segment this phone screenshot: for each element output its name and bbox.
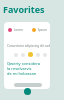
staticText: Consectetur adipiscing elit sed	[7, 44, 50, 48]
staticText: Lorem	[14, 28, 24, 32]
button[interactable]: Add	[24, 88, 31, 95]
button[interactable]: Progress	[14, 83, 42, 87]
staticText: Qwerty considera la resolvarvis de mi he…	[7, 61, 40, 76]
staticText: Favorites	[3, 3, 45, 15]
staticText: Ipsum	[38, 28, 47, 32]
